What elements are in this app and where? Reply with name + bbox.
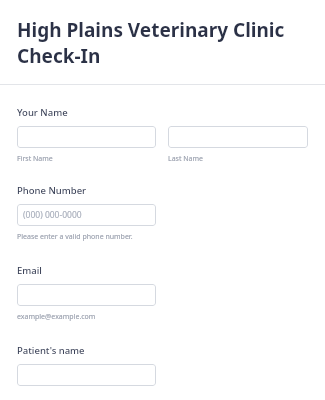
button[interactable]: Phone Number [17,204,156,226]
staticText: (000) 000-0000 [23,209,82,221]
button[interactable]: Email [17,284,156,306]
button[interactable]: Last Name [168,126,308,148]
button[interactable]: First Name [17,126,156,148]
staticText: Patient's name [17,344,85,357]
staticText: High Plains Veterinary Clinic Check-In [17,17,307,68]
staticText: Please enter a valid phone number. [17,232,133,242]
staticText: Last Name [168,154,204,164]
staticText: First Name [17,154,53,164]
staticText: Phone Number [17,184,87,197]
button[interactable]: Patient's name [17,364,156,386]
staticText: Email [17,264,42,277]
staticText: example@example.com [17,312,96,322]
staticText: Your Name [17,106,68,119]
